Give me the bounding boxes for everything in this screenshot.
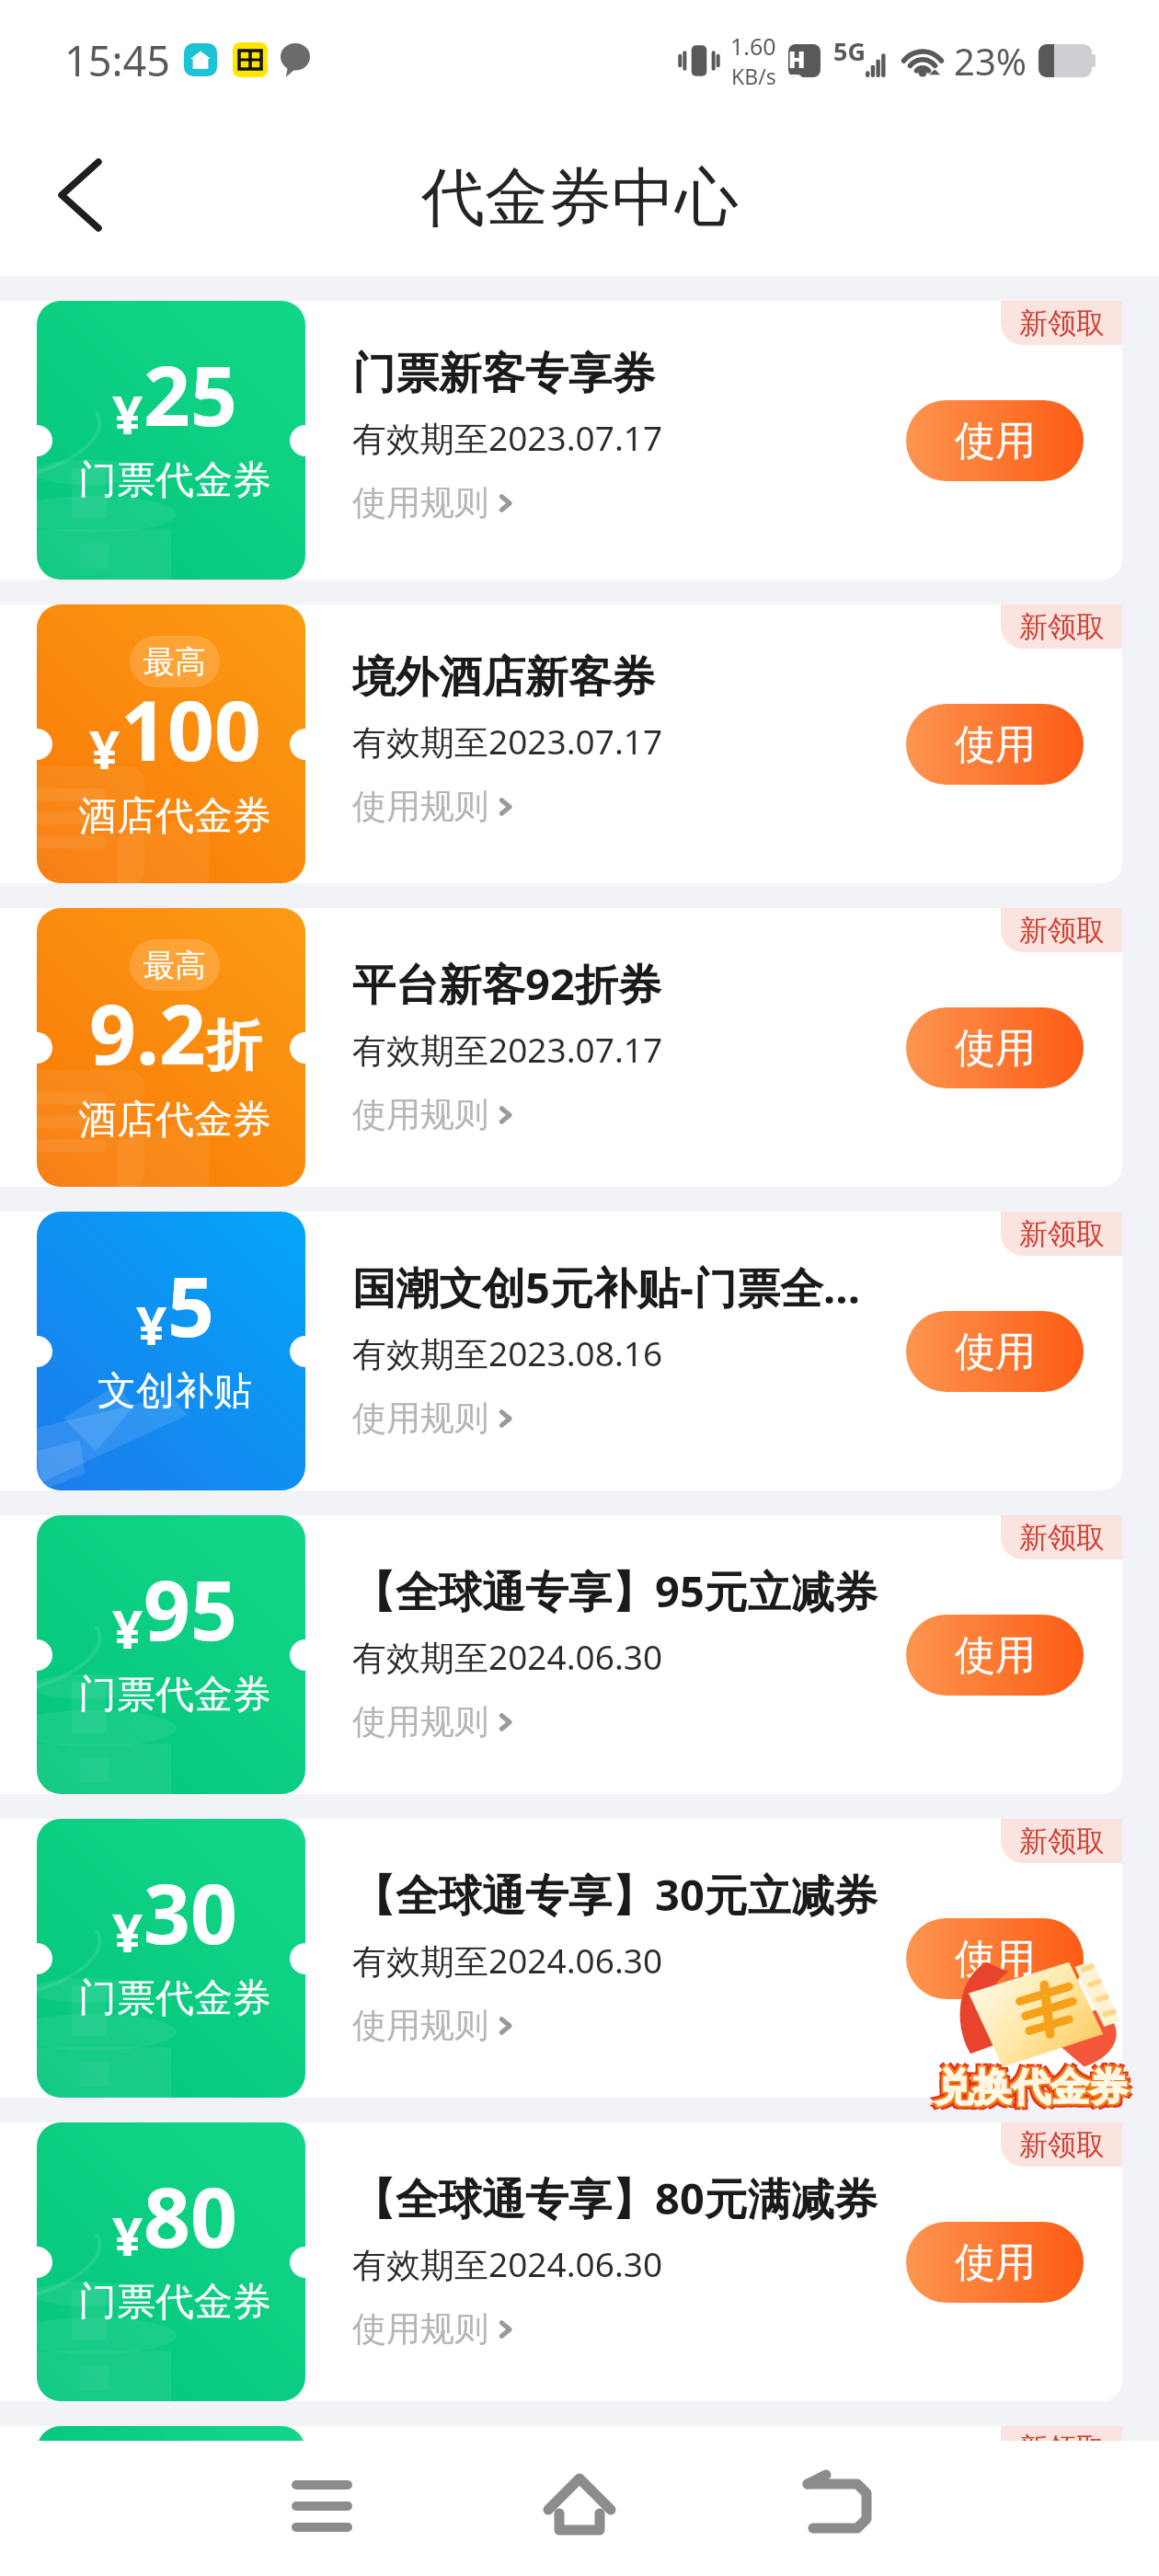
staticText: 9.2 bbox=[89, 977, 206, 1088]
button[interactable]: 使用规则 bbox=[352, 785, 518, 828]
staticText: 兑换代金券 bbox=[933, 2062, 1126, 2110]
staticText: 使用规则 bbox=[352, 481, 488, 524]
staticText: 门票代金券 bbox=[78, 1974, 271, 2023]
staticText: HD bbox=[788, 44, 820, 77]
staticText: 酒店代金券 bbox=[78, 792, 271, 841]
staticText: 兑换代金券 bbox=[931, 2067, 1124, 2116]
button[interactable]: 使用 bbox=[906, 400, 1084, 481]
staticText: 23% bbox=[954, 36, 1027, 86]
button[interactable]: 使用 bbox=[906, 1918, 1084, 1999]
staticText: 新领取 bbox=[1019, 1520, 1105, 1556]
staticText: ¥ bbox=[112, 2199, 143, 2271]
staticText: 25 bbox=[143, 339, 237, 450]
button[interactable]: 使用规则 bbox=[352, 2004, 518, 2047]
staticText: 门票代金券 bbox=[78, 2278, 271, 2327]
button[interactable]: Back bbox=[34, 140, 126, 232]
staticText: 代金券中心 bbox=[421, 158, 739, 238]
staticText: ¥ bbox=[112, 377, 143, 450]
staticText: 使用规则 bbox=[352, 1397, 488, 1440]
staticText: 使用规则 bbox=[352, 785, 488, 828]
staticText: 兑换代金券 bbox=[936, 2065, 1130, 2114]
button[interactable]: 新领取 bbox=[0, 2426, 1159, 2576]
staticText: 境外酒店新客券 bbox=[352, 650, 886, 705]
button[interactable]: 新领取 bbox=[0, 2122, 1159, 2401]
button[interactable]: 新领取 bbox=[0, 1819, 1159, 2098]
staticText: 【全球通专享】80元满减券 bbox=[352, 2168, 886, 2227]
staticText: 文创补贴 bbox=[98, 1367, 252, 1416]
button[interactable]: 使用规则 bbox=[352, 2307, 518, 2351]
staticText: KB/s bbox=[731, 62, 776, 90]
staticText: 兑换代金券 bbox=[933, 2065, 1126, 2114]
button[interactable]: 新领取 bbox=[0, 1515, 1159, 1794]
staticText: 使用规则 bbox=[352, 1700, 488, 1743]
staticText: 使用 bbox=[955, 1934, 1036, 1984]
staticText: 有效期至2024.06.30 bbox=[352, 1633, 663, 1680]
staticText: 5 bbox=[167, 1249, 214, 1361]
staticText: 有效期至2023.07.17 bbox=[352, 718, 663, 765]
staticText: 门票代金券 bbox=[78, 456, 271, 505]
staticText: 有效期至2023.07.17 bbox=[352, 414, 663, 461]
button[interactable]: 兑换代金券 bbox=[936, 1952, 1126, 2116]
button[interactable]: 使用规则 bbox=[352, 1397, 518, 1440]
staticText: 门票代金券 bbox=[78, 1671, 271, 1719]
button[interactable]: 新领取 bbox=[0, 604, 1159, 883]
staticText: ¥ bbox=[89, 712, 120, 785]
staticText: 有效期至2023.07.17 bbox=[352, 1026, 663, 1073]
staticText: 使用 bbox=[955, 1327, 1036, 1377]
staticText: 平台新客92折券 bbox=[352, 954, 886, 1013]
staticText: 【全球通专享】30元立减券 bbox=[352, 1865, 886, 1924]
staticText: 有效期至2024.06.30 bbox=[352, 1937, 663, 1984]
staticText: 【全球通专享】50元立减券 bbox=[352, 2472, 886, 2531]
staticText: ¥ bbox=[112, 1895, 143, 1968]
staticText: 新领取 bbox=[1019, 2431, 1105, 2467]
staticText: 有效期至2023.08.16 bbox=[352, 1329, 663, 1376]
button[interactable]: 使用规则 bbox=[352, 481, 518, 524]
staticText: 使用 bbox=[955, 1630, 1036, 1681]
staticText: 新领取 bbox=[1019, 1823, 1105, 1859]
button[interactable]: 使用 bbox=[906, 1311, 1084, 1392]
staticText: 兑换代金券 bbox=[935, 2064, 1128, 2112]
staticText: 新领取 bbox=[1019, 1216, 1105, 1252]
staticText: 使用 bbox=[955, 1023, 1036, 1074]
staticText: 兑换代金券 bbox=[938, 2060, 1131, 2109]
staticText: 使用规则 bbox=[352, 1093, 488, 1136]
staticText: 15:45 bbox=[64, 32, 171, 88]
staticText: 使用规则 bbox=[352, 2004, 488, 2047]
button[interactable]: 使用 bbox=[906, 1615, 1084, 1696]
staticText: 兑换代金券 bbox=[931, 2060, 1124, 2109]
staticText: 5G bbox=[833, 34, 866, 68]
button[interactable]: Recents bbox=[267, 2447, 377, 2558]
staticText: 30 bbox=[143, 1857, 237, 1968]
staticText: 折 bbox=[206, 1011, 261, 1081]
button[interactable]: 使用规则 bbox=[352, 1093, 518, 1136]
button[interactable]: 使用 bbox=[906, 704, 1084, 785]
button[interactable]: Home bbox=[524, 2447, 635, 2558]
staticText: 有效期至2024.06.30 bbox=[352, 2240, 663, 2287]
staticText: ¥ bbox=[136, 1288, 167, 1361]
staticText: 使用 bbox=[955, 416, 1036, 466]
button[interactable]: 新领取 bbox=[0, 301, 1159, 580]
button[interactable]: 使用 bbox=[906, 2222, 1084, 2303]
staticText: 使用规则 bbox=[352, 2307, 488, 2351]
staticText: 酒店代金券 bbox=[78, 1096, 271, 1144]
staticText: 使用 bbox=[955, 2237, 1036, 2288]
staticText: ¥ bbox=[112, 1592, 143, 1664]
staticText: 兑换代金券 bbox=[938, 2067, 1131, 2116]
staticText: 新领取 bbox=[1019, 305, 1105, 341]
staticText: 80 bbox=[143, 2160, 237, 2271]
staticText: 新领取 bbox=[1019, 2127, 1105, 2163]
button[interactable]: 使用规则 bbox=[352, 1700, 518, 1743]
button[interactable]: 新领取 bbox=[0, 1212, 1159, 1490]
button[interactable]: 新领取 bbox=[0, 908, 1159, 1187]
staticText: 使用 bbox=[955, 719, 1036, 770]
staticText: 最高 bbox=[143, 642, 206, 682]
button[interactable]: Back bbox=[782, 2447, 892, 2558]
staticText: 新领取 bbox=[1019, 913, 1105, 949]
staticText: 最高 bbox=[143, 946, 206, 985]
button[interactable]: 使用 bbox=[906, 1007, 1084, 1088]
